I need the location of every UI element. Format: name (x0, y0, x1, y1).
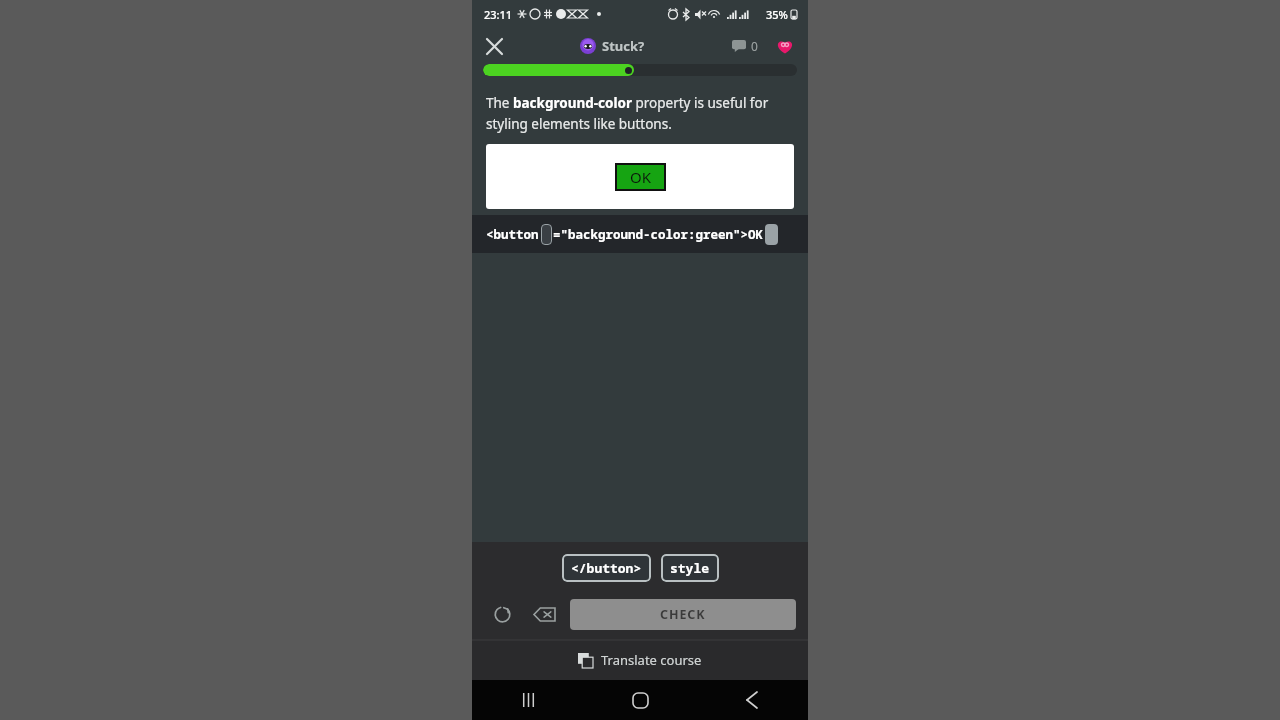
button[interactable]: Close (478, 30, 510, 62)
button[interactable]: Empty slot 2 (765, 224, 778, 245)
staticText: Stuck? (602, 37, 645, 55)
staticText: OK (630, 167, 652, 187)
staticText: ="background-color:green">OK (553, 226, 764, 243)
staticText: </button> (571, 559, 642, 577)
staticText: CHECK (660, 606, 706, 623)
button[interactable]: Lives (770, 31, 800, 61)
button[interactable]: Back (696, 680, 808, 720)
button[interactable]: style (661, 554, 719, 582)
button[interactable]: Empty slot 1 (541, 224, 552, 245)
staticText: 0 (751, 38, 758, 54)
button[interactable]: Stuck? (576, 33, 649, 59)
button[interactable]: Translate course (570, 647, 710, 673)
staticText: style (670, 559, 710, 577)
button[interactable]: CHECK (570, 599, 796, 630)
button[interactable]: Recents (472, 680, 584, 720)
staticText: 23:11 (484, 7, 513, 22)
button[interactable]: Comments (728, 34, 762, 58)
button[interactable]: </button> (562, 554, 651, 582)
button[interactable]: Backspace (526, 596, 562, 632)
staticText: <button (486, 226, 539, 243)
button[interactable]: Reset (484, 596, 520, 632)
button[interactable]: OK (617, 165, 664, 189)
staticText: 35% (766, 7, 788, 22)
staticText: The background-color property is useful … (486, 94, 794, 133)
button[interactable]: Home (584, 680, 696, 720)
staticText: Translate course (601, 651, 702, 669)
